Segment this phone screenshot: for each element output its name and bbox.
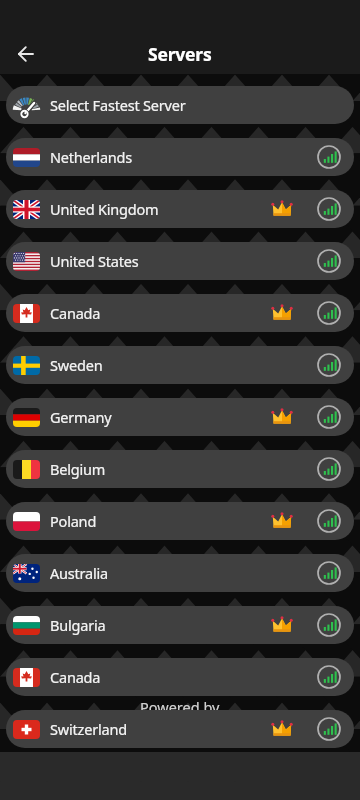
button[interactable]: Poland	[6, 502, 354, 540]
staticText: United States	[50, 251, 139, 271]
button[interactable]: Australia	[6, 554, 354, 592]
button[interactable]: Germany	[6, 398, 354, 436]
staticText: Sweden	[50, 355, 103, 375]
staticText: Canada	[50, 667, 101, 687]
button[interactable]	[8, 36, 44, 72]
button[interactable]: Canada	[6, 658, 354, 696]
staticText: Select Fastest Server	[50, 95, 186, 115]
staticText: Canada	[50, 303, 101, 323]
staticText: Bulgaria	[50, 615, 106, 635]
staticText: Powered by	[140, 697, 220, 717]
button[interactable]: United States	[6, 242, 354, 280]
staticText: Germany	[50, 407, 112, 427]
staticText: Netherlands	[50, 147, 133, 167]
button[interactable]: Switzerland	[6, 710, 354, 748]
button[interactable]: Netherlands	[6, 138, 354, 176]
staticText: Poland	[50, 511, 97, 531]
staticText: Belgium	[50, 459, 106, 479]
staticText: United Kingdom	[50, 199, 159, 219]
staticText: Servers	[148, 42, 212, 66]
button[interactable]: Canada	[6, 294, 354, 332]
staticText: Switzerland	[50, 719, 127, 739]
staticText: Australia	[50, 563, 109, 583]
button[interactable]: Sweden	[6, 346, 354, 384]
button[interactable]: Bulgaria	[6, 606, 354, 644]
button[interactable]: United Kingdom	[6, 190, 354, 228]
button[interactable]: Belgium	[6, 450, 354, 488]
button[interactable]: Select Fastest Server	[6, 86, 354, 124]
